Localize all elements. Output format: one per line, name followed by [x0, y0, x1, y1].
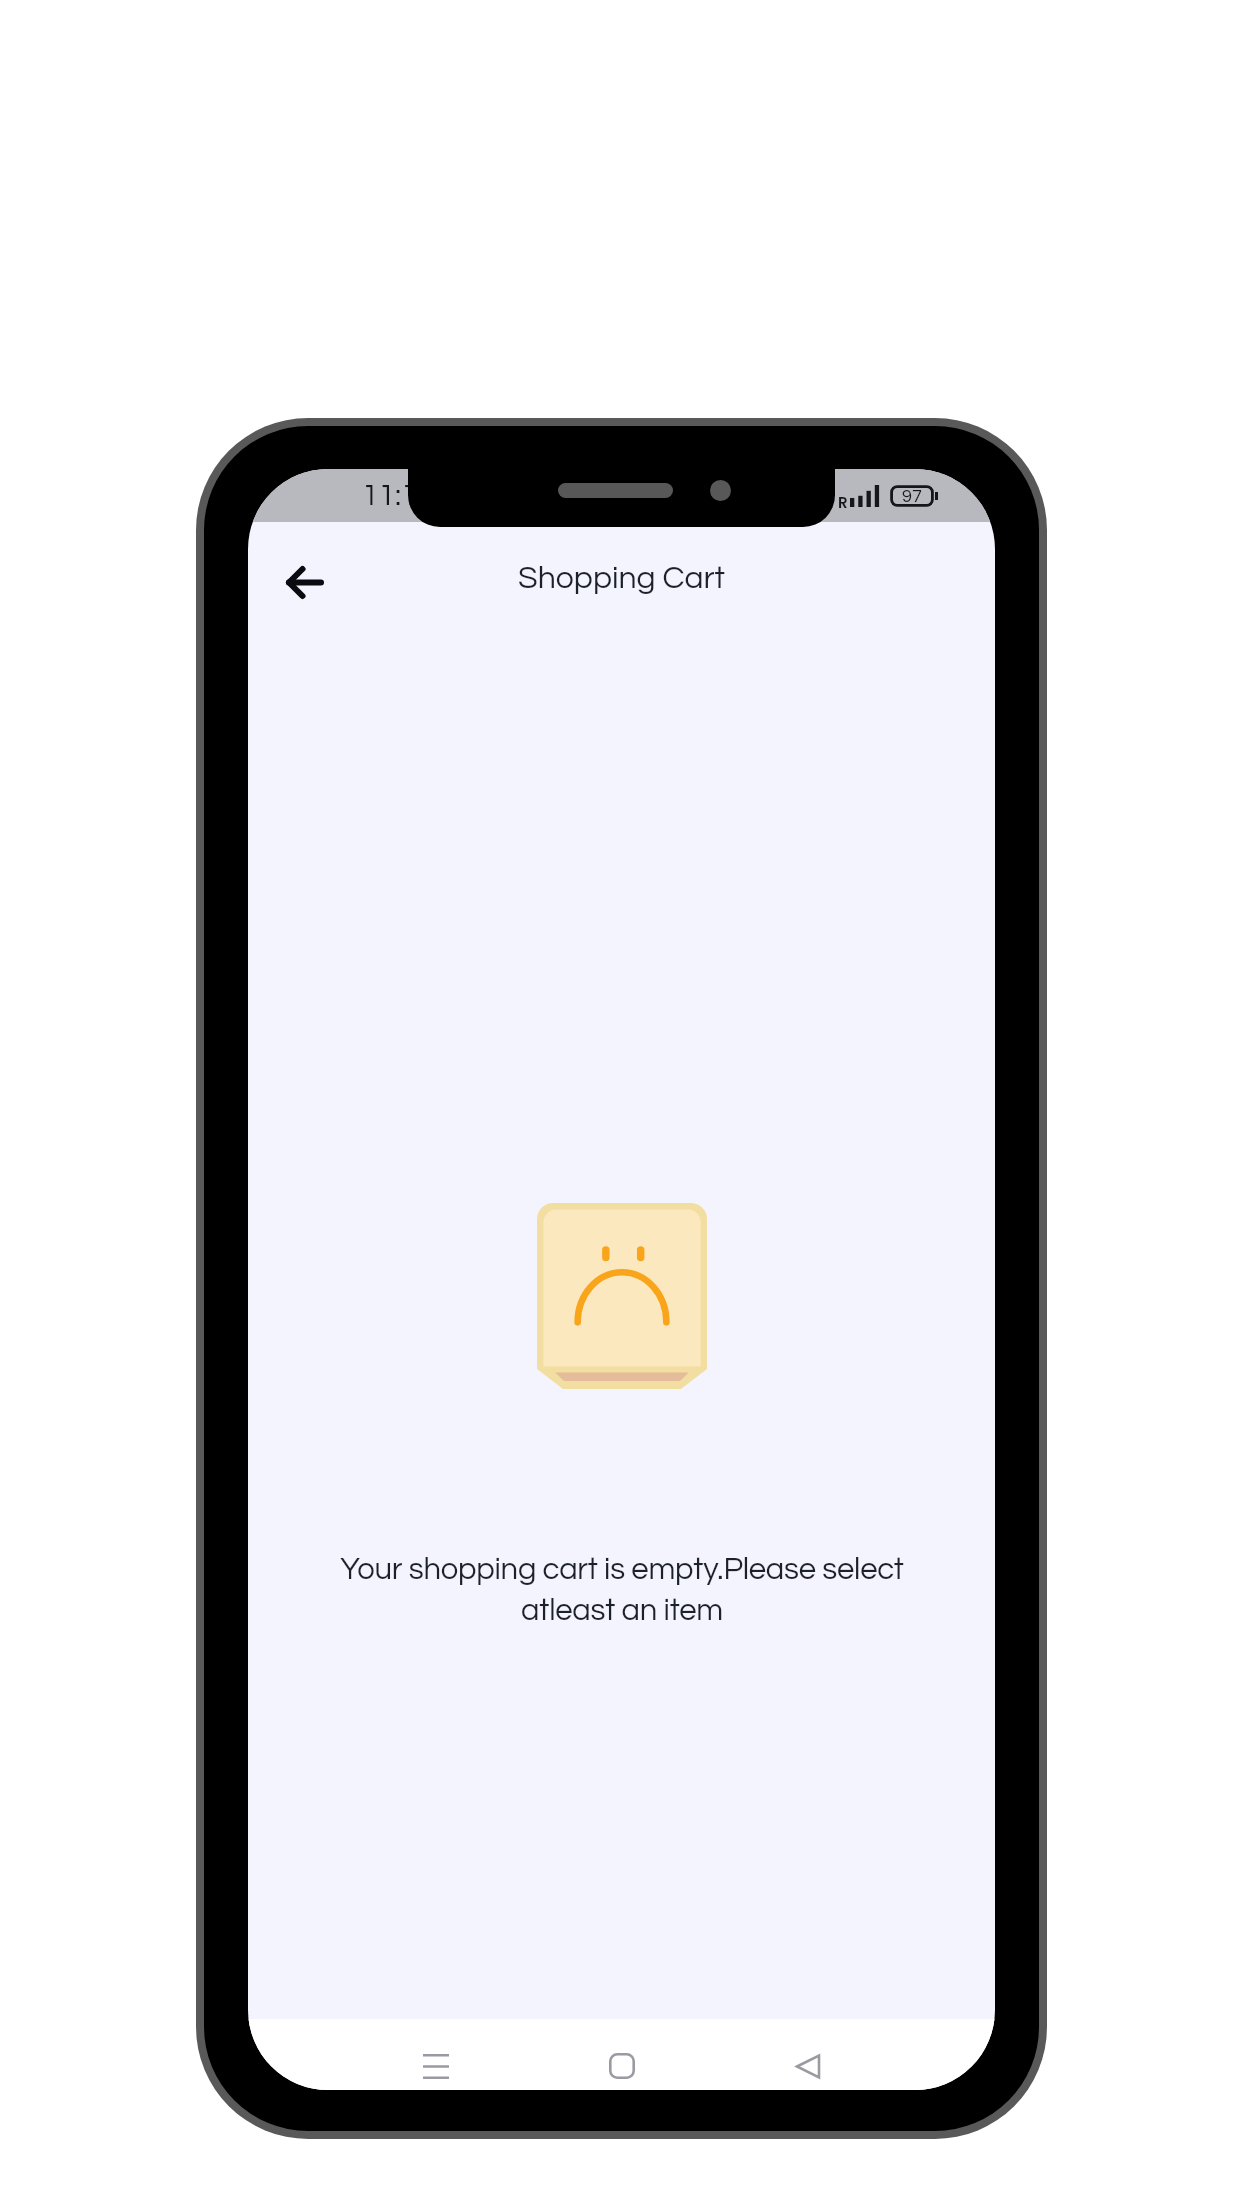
button[interactable]: Back [782, 2040, 834, 2090]
button[interactable]: Home [596, 2040, 648, 2090]
button[interactable]: Back [276, 553, 334, 611]
staticText: Your shopping cart is empty.Please selec… [322, 1554, 922, 1626]
button[interactable]: Recent apps [410, 2040, 462, 2090]
staticText: R [838, 492, 846, 513]
staticText: 11:18 [362, 480, 435, 511]
staticText: 97 [902, 487, 922, 506]
staticText: Shopping Cart [518, 562, 726, 595]
